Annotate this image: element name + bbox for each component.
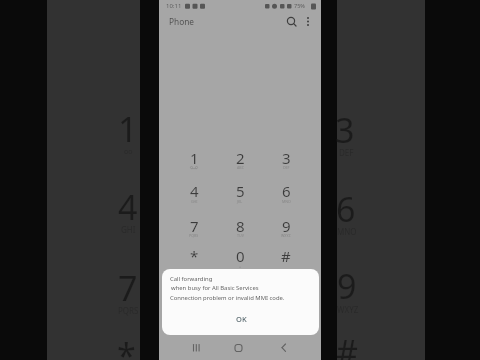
staticText: ABC bbox=[237, 165, 244, 170]
staticText: 8 bbox=[236, 216, 245, 236]
button[interactable] bbox=[185, 338, 209, 358]
staticText: 0 bbox=[236, 246, 245, 266]
staticText: 2 bbox=[236, 148, 245, 168]
staticText: MNO bbox=[282, 199, 291, 204]
staticText: PQRS bbox=[189, 233, 199, 238]
staticText: DEF bbox=[283, 165, 290, 170]
staticText: 9 bbox=[337, 263, 357, 309]
staticText: * bbox=[190, 246, 199, 266]
staticText: 5 bbox=[236, 181, 245, 201]
staticText: JKL bbox=[237, 199, 243, 204]
staticText: 75% bbox=[294, 2, 305, 9]
staticText: TUV bbox=[237, 233, 244, 238]
staticText: # bbox=[281, 246, 291, 266]
button[interactable] bbox=[270, 145, 302, 175]
button[interactable] bbox=[270, 243, 302, 273]
staticText: OK bbox=[236, 314, 247, 324]
staticText: WXYZ bbox=[281, 233, 291, 238]
staticText: Call forwarding bbox=[170, 275, 213, 283]
staticText: 1 bbox=[118, 106, 138, 152]
button[interactable] bbox=[227, 338, 251, 358]
staticText: 3 bbox=[335, 107, 355, 153]
staticText: GHI bbox=[191, 199, 198, 204]
staticText: 7 bbox=[118, 265, 138, 311]
staticText: * bbox=[117, 332, 136, 360]
staticText: Connection problem or invalid MMI code. bbox=[170, 294, 285, 302]
staticText: 6 bbox=[336, 186, 356, 232]
staticText: 4 bbox=[190, 181, 199, 201]
staticText: Phone bbox=[169, 16, 194, 27]
button[interactable] bbox=[270, 213, 302, 243]
button[interactable] bbox=[224, 243, 256, 273]
button[interactable] bbox=[178, 213, 210, 243]
staticText: # bbox=[336, 329, 358, 360]
staticText: 4 bbox=[118, 184, 138, 230]
button[interactable] bbox=[270, 178, 302, 208]
staticText: + bbox=[239, 264, 242, 269]
button[interactable]: OK bbox=[226, 310, 256, 327]
button[interactable] bbox=[178, 178, 210, 208]
staticText: 1 bbox=[190, 148, 199, 168]
staticText: 6 bbox=[282, 181, 291, 201]
staticText: 10:11 bbox=[166, 2, 182, 10]
button[interactable] bbox=[178, 243, 210, 273]
button[interactable] bbox=[178, 145, 210, 175]
button[interactable] bbox=[224, 213, 256, 243]
staticText: when busy for All Basic Services bbox=[171, 284, 259, 292]
button[interactable] bbox=[224, 178, 256, 208]
button[interactable] bbox=[224, 145, 256, 175]
staticText: 3 bbox=[282, 148, 291, 168]
staticText: 9 bbox=[282, 216, 291, 236]
button[interactable] bbox=[272, 338, 296, 358]
button[interactable] bbox=[285, 15, 298, 28]
button[interactable] bbox=[302, 15, 314, 27]
staticText: 7 bbox=[190, 216, 199, 236]
